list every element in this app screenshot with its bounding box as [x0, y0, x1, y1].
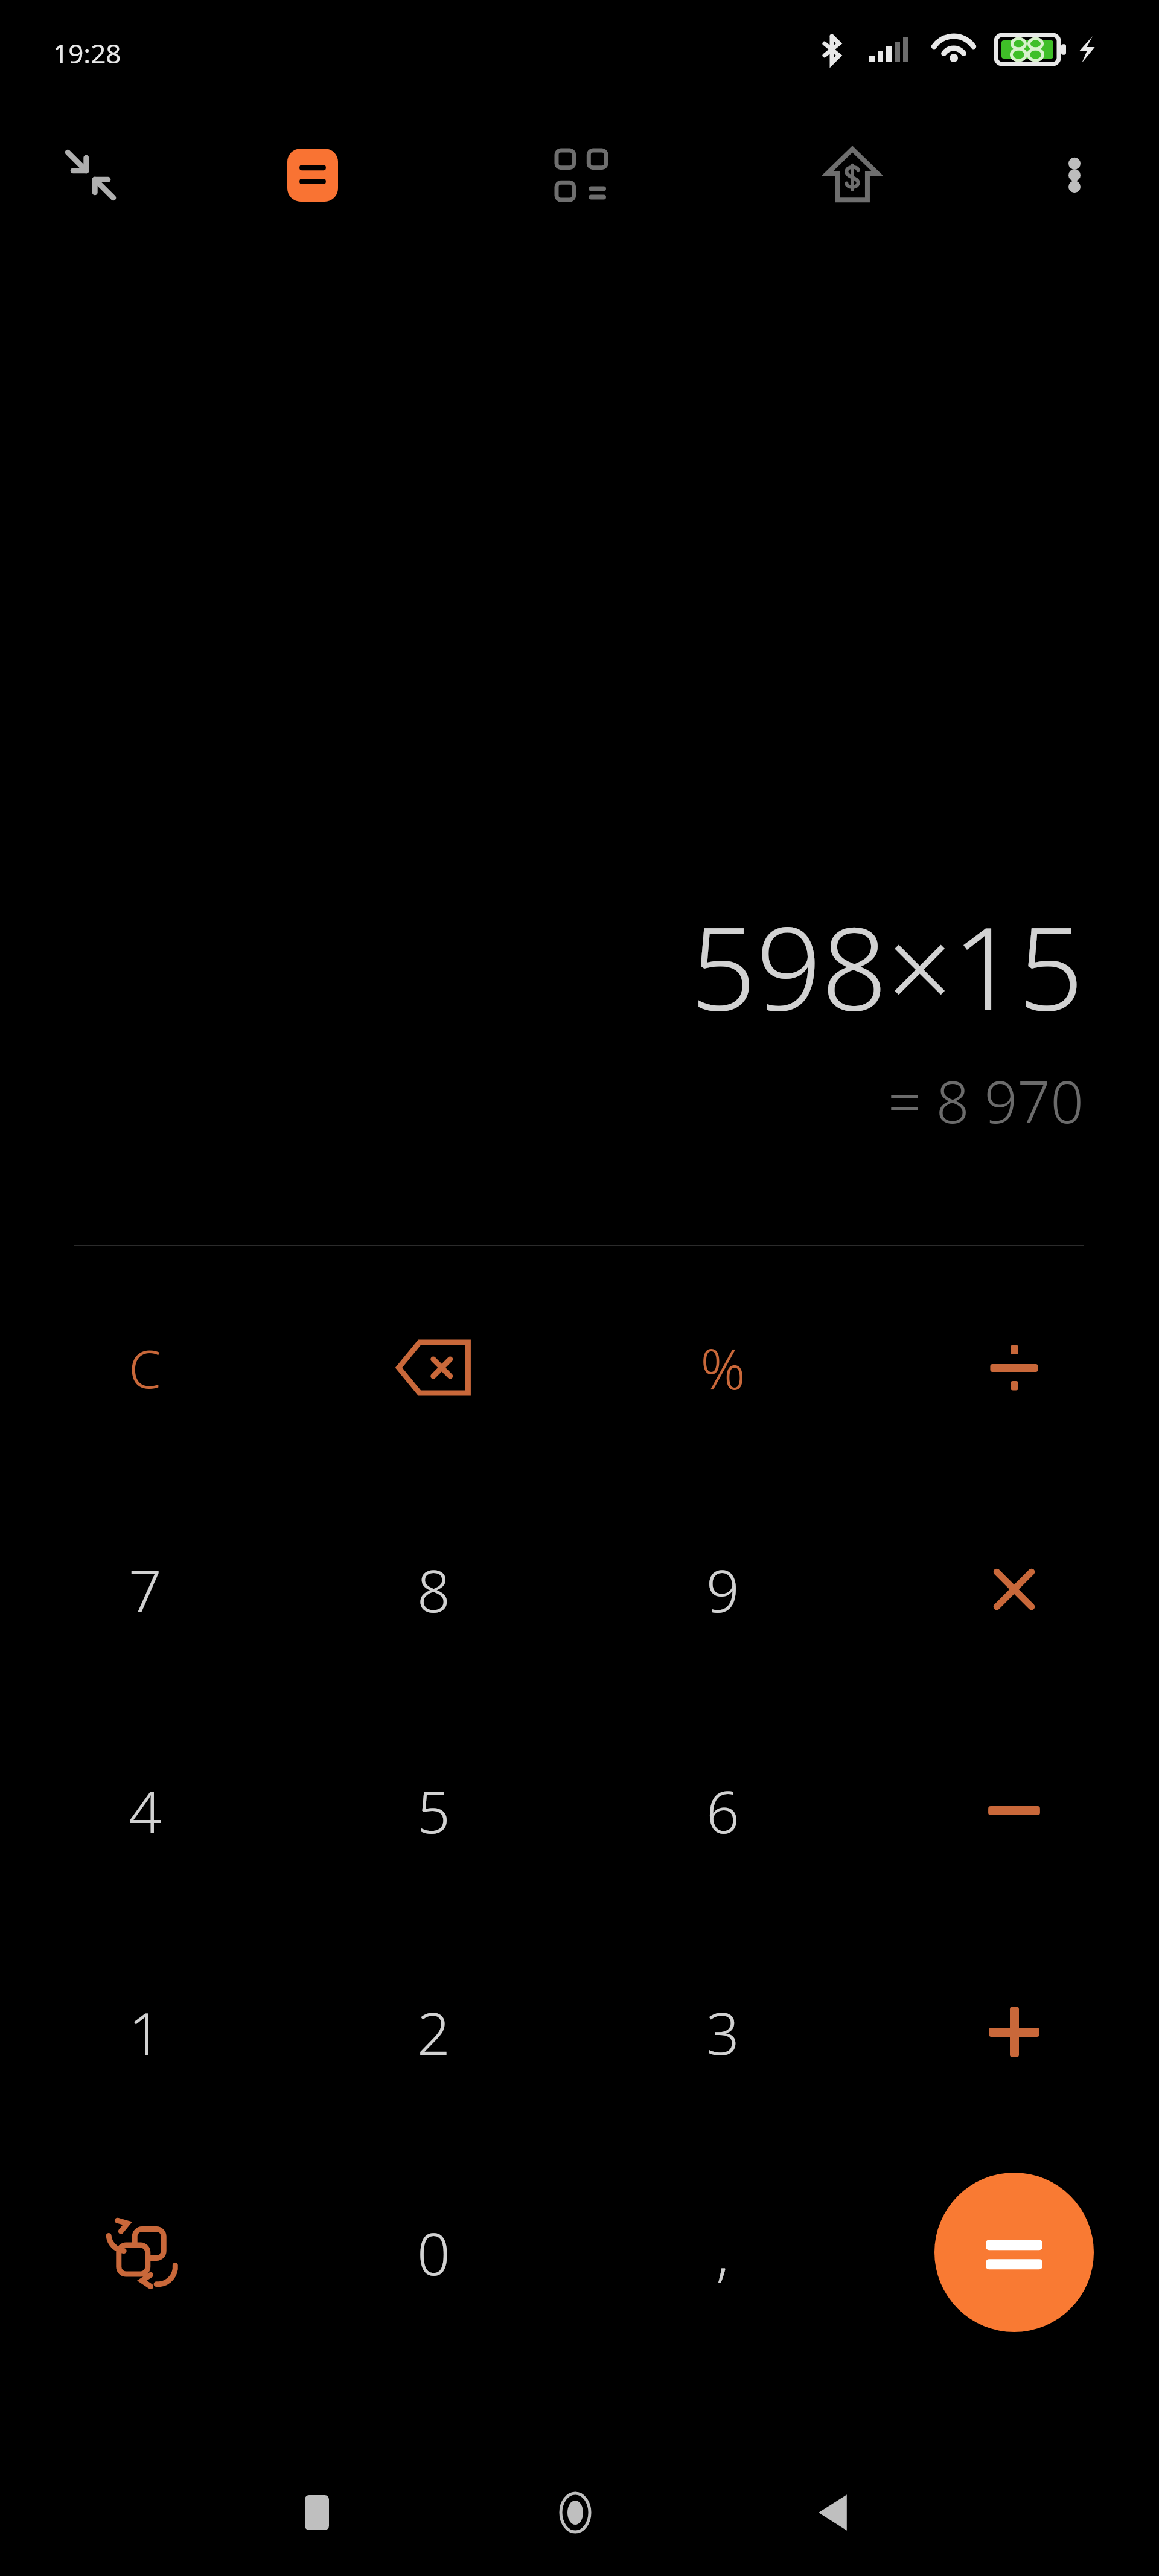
staticText: % [700, 1330, 746, 1406]
button[interactable]: Back [782, 2461, 885, 2564]
button[interactable]: 0 [307, 2153, 560, 2352]
button[interactable]: 4 [18, 1711, 272, 1910]
button[interactable]: Collapse [37, 122, 144, 228]
staticText: 598×15 [691, 888, 1084, 1044]
staticText: 9 [706, 1550, 739, 1629]
button[interactable]: 6 [596, 1711, 849, 1910]
button[interactable]: Backspace [307, 1268, 560, 1467]
staticText: 1 [129, 1993, 162, 2072]
button[interactable]: 5 [307, 1711, 560, 1910]
button[interactable]: 2 [307, 1932, 560, 2132]
staticText: 0 [417, 2213, 450, 2292]
staticText: 2 [417, 1993, 450, 2072]
button[interactable]: Recent apps [266, 2461, 368, 2564]
button[interactable]: 1 [18, 1932, 272, 2132]
staticText: 4 [129, 1771, 162, 1850]
button[interactable]: 8 [307, 1490, 560, 1689]
button[interactable]: Subtract [887, 1711, 1141, 1910]
button[interactable]: , [596, 2153, 849, 2352]
button[interactable]: More options [1021, 122, 1128, 228]
staticText: 6 [706, 1771, 739, 1850]
button[interactable]: C [18, 1268, 272, 1467]
button[interactable]: Equals [934, 2173, 1094, 2332]
button[interactable]: 9 [596, 1490, 849, 1689]
button[interactable]: Add [887, 1932, 1141, 2132]
button[interactable]: % [596, 1268, 849, 1467]
button[interactable]: Loan calculator [799, 122, 905, 228]
button[interactable]: Calculator [260, 122, 366, 228]
button[interactable]: Convert [18, 2153, 272, 2352]
staticText: 8 [417, 1550, 450, 1629]
staticText: 7 [129, 1550, 162, 1629]
staticText: 19:28 [53, 35, 121, 71]
button[interactable]: Multiply [887, 1490, 1141, 1689]
button[interactable]: Home [524, 2461, 627, 2564]
staticText: 3 [706, 1993, 739, 2072]
staticText: , [716, 2213, 729, 2292]
button[interactable]: Unit converter [528, 122, 634, 228]
staticText: C [129, 1333, 161, 1403]
button[interactable]: 7 [18, 1490, 272, 1689]
button[interactable]: Divide [887, 1268, 1141, 1467]
button[interactable]: 3 [596, 1932, 849, 2132]
staticText: 5 [417, 1771, 450, 1850]
staticText: = 8 970 [888, 1061, 1084, 1140]
